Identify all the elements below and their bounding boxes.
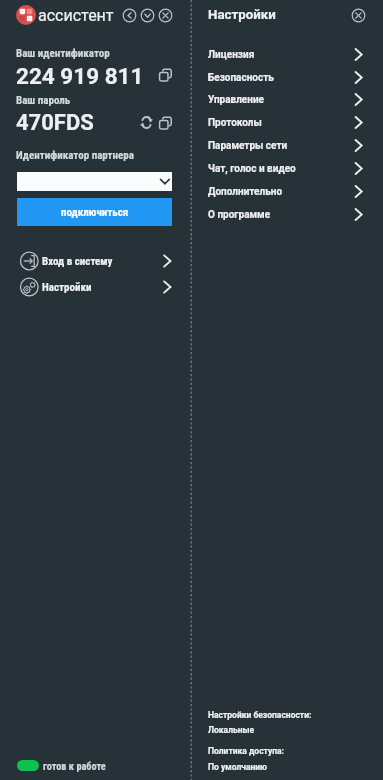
staticText: Политика доступа: xyxy=(208,746,284,756)
staticText: Чат, голос и видео xyxy=(208,163,296,175)
staticText: Параметры сети xyxy=(208,140,288,152)
button[interactable]: Свернуть xyxy=(139,7,156,24)
button[interactable]: Закрыть xyxy=(157,7,174,24)
staticText: готов к работе xyxy=(43,760,106,772)
button[interactable]: Протоколы xyxy=(193,111,383,134)
button[interactable]: Обновить xyxy=(139,115,154,130)
button[interactable]: Настройки xyxy=(14,274,177,300)
staticText: Ваш пароль xyxy=(16,94,71,107)
staticText: По умолчанию xyxy=(208,762,267,772)
staticText: ассистент xyxy=(38,6,114,25)
staticText: О программе xyxy=(208,209,271,221)
button[interactable]: подключиться xyxy=(17,198,172,226)
button[interactable] xyxy=(17,172,172,191)
staticText: Ваш идентификатор xyxy=(16,47,110,60)
button[interactable]: Копировать xyxy=(158,67,173,82)
button[interactable]: Чат, голос и видео xyxy=(193,157,383,180)
button[interactable]: Параметры сети xyxy=(193,134,383,157)
button[interactable]: Управление xyxy=(193,88,383,111)
staticText: Настройки xyxy=(42,281,92,294)
staticText: Вход в систему xyxy=(42,255,113,268)
button[interactable]: Назад xyxy=(121,7,138,24)
button[interactable]: Закрыть настройки xyxy=(350,7,367,24)
staticText: Идентификатор партнера xyxy=(16,149,134,162)
staticText: 470FDS xyxy=(16,110,94,135)
staticText: Дополнительно xyxy=(208,186,283,198)
staticText: 224 919 811 xyxy=(16,63,144,88)
button[interactable]: О программе xyxy=(193,203,383,226)
staticText: Управление xyxy=(208,94,264,106)
button[interactable]: Лицензия xyxy=(193,43,383,66)
button[interactable]: Копировать xyxy=(158,115,173,130)
button[interactable]: Безопасность xyxy=(193,66,383,89)
button[interactable]: Вход в систему xyxy=(14,248,177,274)
staticText: Протоколы xyxy=(208,117,262,129)
staticText: Локальные xyxy=(208,725,255,735)
staticText: Лицензия xyxy=(208,49,255,61)
staticText: Безопасность xyxy=(208,72,274,84)
staticText: Настройки безопасности: xyxy=(208,710,312,720)
staticText: подключиться xyxy=(61,206,129,219)
button[interactable]: Дополнительно xyxy=(193,181,383,203)
staticText: Настройки xyxy=(208,7,276,23)
